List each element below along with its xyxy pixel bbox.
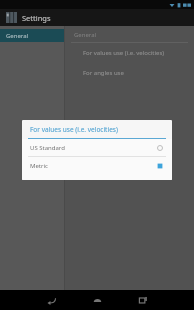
staticText: Metric <box>30 162 48 170</box>
button[interactable]: Back <box>28 290 74 310</box>
button[interactable]: General <box>0 29 64 42</box>
button[interactable]: US Standard <box>22 139 172 156</box>
button[interactable]: For values use (i.e. velocities) <box>65 43 194 63</box>
button[interactable]: Recents <box>120 290 166 310</box>
button[interactable]: Metric <box>22 157 172 174</box>
button[interactable]: App icon <box>6 12 17 23</box>
staticText: For angles use <box>83 69 124 77</box>
staticText: US Standard <box>30 144 65 152</box>
button[interactable]: For angles use <box>65 63 194 83</box>
staticText: For values use (i.e. velocities) <box>83 49 165 57</box>
staticText: General <box>6 32 29 40</box>
staticText: For values use (i.e. velocities) <box>30 125 118 134</box>
staticText: General <box>74 31 97 39</box>
staticText: Settings <box>22 13 51 23</box>
button[interactable]: Home <box>74 290 120 310</box>
